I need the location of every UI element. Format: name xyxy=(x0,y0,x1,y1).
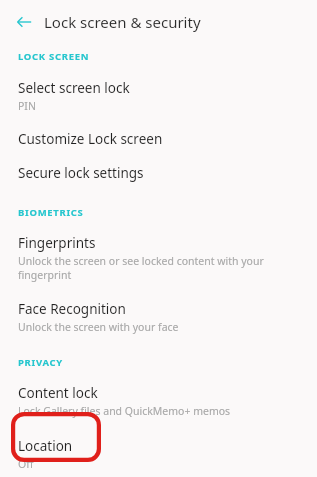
button[interactable]: Face Recognition xyxy=(0,284,317,336)
staticText: PRIVACY xyxy=(18,356,63,369)
button[interactable]: Content lock xyxy=(0,369,317,420)
button[interactable]: Secure lock settings xyxy=(0,154,317,188)
button[interactable]: Location xyxy=(0,420,317,473)
staticText: Secure lock settings xyxy=(18,164,144,182)
staticText: Unlock the screen or see locked content … xyxy=(18,254,277,282)
button[interactable]: Fingerprints xyxy=(0,219,317,284)
button[interactable]: Back xyxy=(10,8,38,36)
button[interactable]: Customize Lock screen xyxy=(0,115,317,154)
button[interactable]: Select screen lock xyxy=(0,63,317,115)
staticText: Unlock the screen with your face xyxy=(18,320,179,334)
staticText: Face Recognition xyxy=(18,300,126,318)
staticText: PIN xyxy=(18,99,36,113)
staticText: Location xyxy=(18,437,73,455)
staticText: Content lock xyxy=(18,384,98,402)
staticText: Fingerprints xyxy=(18,234,96,252)
staticText: Select screen lock xyxy=(18,79,130,97)
staticText: Off xyxy=(18,457,34,471)
staticText: BIOMETRICS xyxy=(18,206,84,219)
staticText: Customize Lock screen xyxy=(18,130,163,148)
staticText: Lock screen & security xyxy=(44,12,201,32)
staticText: LOCK SCREEN xyxy=(18,50,90,63)
staticText: Lock Gallery files and QuickMemo+ memos xyxy=(18,404,231,418)
